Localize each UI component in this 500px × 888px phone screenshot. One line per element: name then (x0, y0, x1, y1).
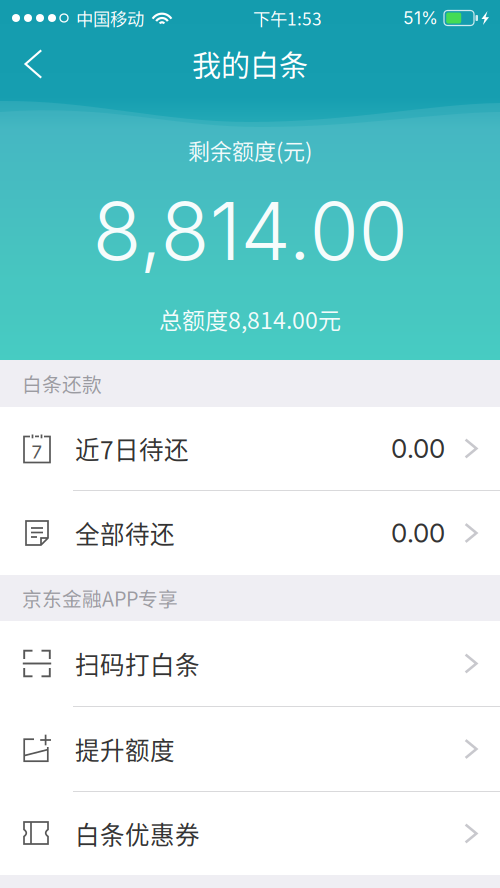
button[interactable]: 7 (0, 407, 500, 491)
staticText: 提升额度 (75, 731, 175, 767)
button[interactable]: Back (0, 43, 63, 81)
staticText: 扫码打白条 (75, 646, 200, 681)
button[interactable]: 扫码打白条 (0, 621, 500, 707)
button[interactable]: 全部待还 (0, 491, 500, 575)
staticText: 7 (31, 440, 42, 463)
staticText: 全部待还 (75, 515, 175, 551)
staticText: 我的白条 (192, 43, 308, 85)
staticText: 近7日待还 (75, 431, 189, 466)
staticText: 51% (403, 7, 438, 28)
staticText: 8,814.00 (92, 183, 407, 279)
staticText: 京东金融APP专享 (22, 584, 178, 612)
staticText: 白条优惠券 (75, 816, 200, 851)
staticText: 0.00 (391, 517, 445, 549)
button[interactable]: 白条优惠券 (0, 792, 500, 875)
staticText: 总额度8,814.00元 (159, 302, 341, 336)
staticText: 剩余额度(元) (188, 134, 312, 166)
staticText: 中国移动 (76, 5, 144, 31)
button[interactable]: 提升额度 (0, 707, 500, 792)
staticText: 白条还款 (22, 369, 102, 398)
staticText: 0.00 (391, 433, 445, 464)
staticText: 下午1:53 (253, 5, 322, 31)
